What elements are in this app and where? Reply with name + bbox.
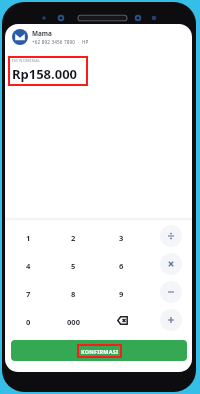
staticText: 000 [67,317,81,327]
button[interactable]: 7 [5,278,51,306]
button[interactable]: 2 [51,222,98,250]
button[interactable]: 9 [98,278,145,306]
staticText: 0 [26,317,31,327]
staticText: 6 [119,261,124,271]
staticText: 7 [26,289,31,299]
staticText: Mama [32,29,52,38]
staticText: Rp158.000 [12,65,78,83]
button[interactable]: 3 [98,222,145,250]
staticText: +62 892 3456 7890 · HP [32,39,89,45]
button[interactable]: 1 [5,222,51,250]
button[interactable]: Multiply [160,253,182,275]
button[interactable]: 6 [98,250,145,278]
staticText: 9 [119,289,124,299]
button[interactable]: 000 [51,306,98,334]
button[interactable]: 4 [5,250,51,278]
button[interactable]: Delete [98,306,145,334]
button[interactable]: Divide [160,225,182,247]
button[interactable]: 5 [51,250,98,278]
button[interactable]: 0 [5,306,51,334]
button[interactable]: Subtract [160,281,182,303]
staticText: 1 [26,233,31,243]
button[interactable]: Mama [12,26,192,48]
staticText: 2 [71,233,76,243]
staticText: 8 [71,289,76,299]
staticText: 3 [119,233,124,243]
staticText: ISI NOMINAL [12,58,41,63]
staticText: KONFIRMASI [81,348,119,355]
button[interactable]: KONFIRMASI [11,340,187,361]
staticText: 5 [71,261,76,271]
button[interactable]: 8 [51,278,98,306]
button[interactable]: Add [160,309,182,331]
staticText: 4 [26,261,31,271]
